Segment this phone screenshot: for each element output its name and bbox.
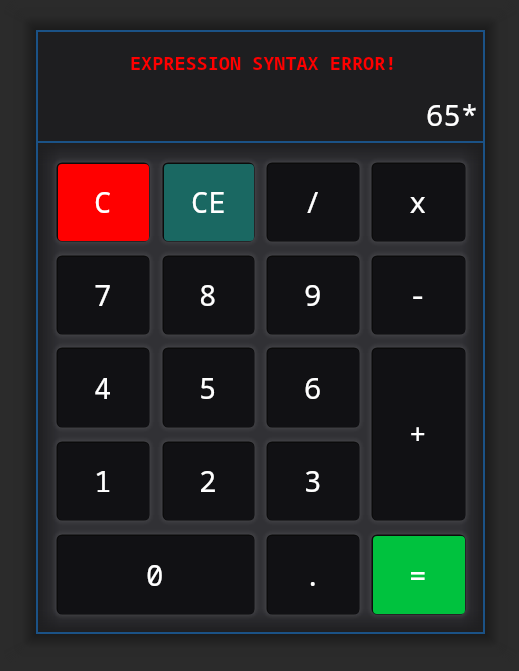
staticText: 8 [199, 275, 217, 314]
button[interactable]: C [58, 164, 149, 241]
staticText: = [409, 555, 427, 594]
button[interactable]: 0 [58, 536, 254, 614]
staticText: x [409, 182, 427, 221]
staticText: 65* [426, 95, 479, 134]
staticText: 9 [304, 275, 322, 314]
button[interactable]: 3 [268, 443, 359, 520]
button[interactable]: 2 [164, 443, 254, 520]
button[interactable]: 1 [58, 443, 149, 520]
staticText: 6 [304, 368, 322, 407]
staticText: 1 [94, 461, 112, 500]
staticText: - [409, 275, 427, 314]
staticText: 5 [199, 368, 217, 407]
staticText: 2 [199, 461, 217, 500]
button[interactable]: 9 [268, 257, 359, 334]
staticText: . [304, 555, 322, 594]
button[interactable]: 8 [164, 257, 254, 334]
staticText: / [304, 182, 322, 221]
button[interactable]: = [373, 536, 465, 614]
staticText: C [94, 182, 112, 221]
staticText: + [409, 414, 427, 453]
button[interactable]: CE [164, 164, 254, 241]
button[interactable]: / [268, 164, 359, 241]
button[interactable]: 4 [58, 349, 149, 427]
staticText: EXPRESSION SYNTAX ERROR! [130, 50, 397, 75]
button[interactable]: 6 [268, 349, 359, 427]
button[interactable]: x [373, 164, 465, 241]
button[interactable]: + [373, 349, 465, 520]
button[interactable]: - [373, 257, 465, 334]
staticText: 7 [94, 275, 112, 314]
staticText: 0 [146, 555, 164, 594]
button[interactable]: 5 [164, 349, 254, 427]
staticText: 4 [94, 368, 112, 407]
button[interactable]: 7 [58, 257, 149, 334]
button[interactable]: . [268, 536, 359, 614]
staticText: CE [191, 182, 226, 221]
staticText: 3 [304, 461, 322, 500]
